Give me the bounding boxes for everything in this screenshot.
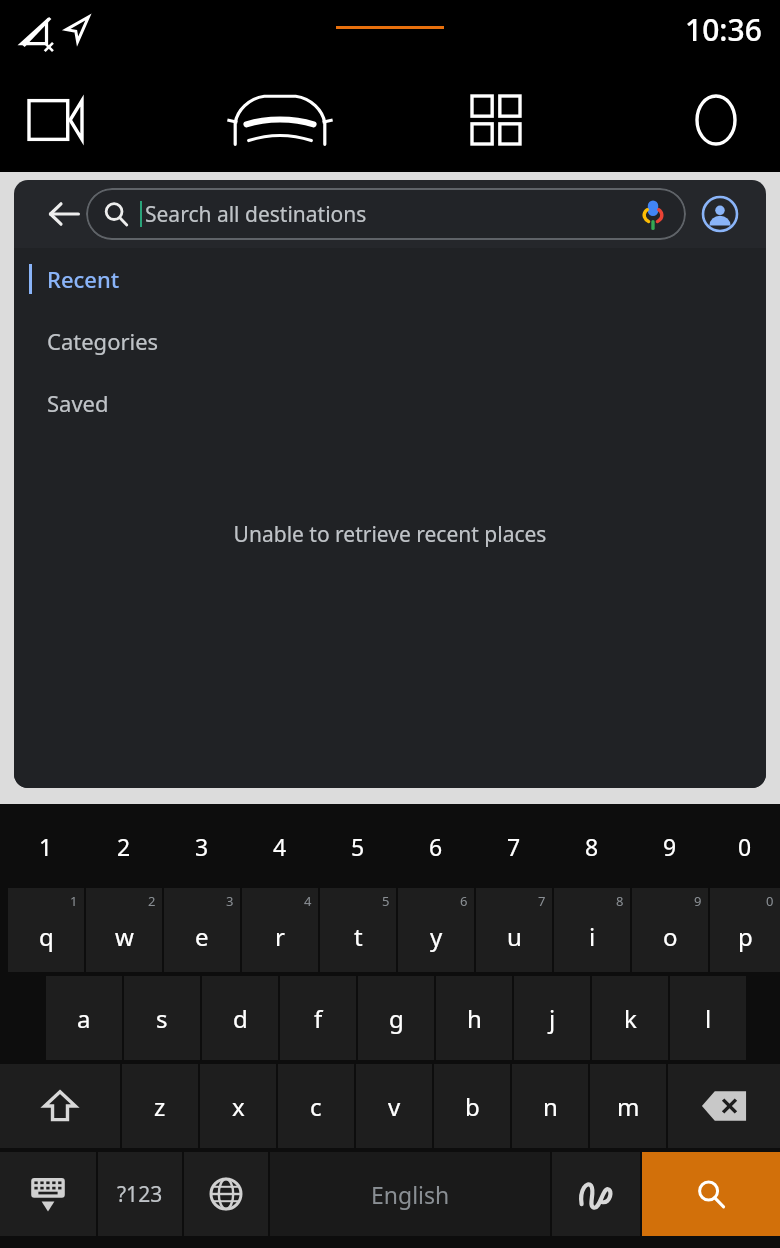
button[interactable]: n <box>512 1064 588 1148</box>
staticText: 0 <box>766 892 774 910</box>
button[interactable]: z <box>122 1064 198 1148</box>
staticText: g <box>389 1002 404 1035</box>
button[interactable]: a <box>46 976 122 1060</box>
button[interactable]: 6 <box>398 888 474 972</box>
staticText: Categories <box>47 326 159 356</box>
staticText: c <box>310 1090 322 1123</box>
staticText: r <box>275 920 285 953</box>
staticText: 7 <box>507 831 521 862</box>
staticText: b <box>465 1090 480 1123</box>
staticText: 3 <box>226 892 234 910</box>
button[interactable]: Car <box>215 68 345 172</box>
button[interactable]: f <box>280 976 356 1060</box>
button[interactable]: h <box>436 976 512 1060</box>
staticText: f <box>314 1002 323 1035</box>
button[interactable]: j <box>514 976 590 1060</box>
button[interactable]: Hide keyboard <box>0 1152 96 1236</box>
staticText: 6 <box>460 892 468 910</box>
button[interactable]: Recent <box>14 248 766 310</box>
staticText: y <box>430 920 443 953</box>
staticText: 9 <box>663 831 677 862</box>
staticText: 4 <box>273 831 287 862</box>
button[interactable]: s <box>124 976 200 1060</box>
button[interactable]: 1 <box>8 888 84 972</box>
staticText: 0 <box>738 831 752 862</box>
staticText: 6 <box>429 831 443 862</box>
staticText: 8 <box>616 892 624 910</box>
button[interactable]: Back <box>30 180 98 248</box>
button[interactable]: Handwriting <box>552 1152 640 1236</box>
staticText: j <box>549 1002 556 1035</box>
staticText: 10:36 <box>685 9 762 50</box>
staticText: Recent <box>47 264 120 294</box>
button[interactable]: 7 <box>476 888 552 972</box>
button[interactable]: x <box>200 1064 276 1148</box>
button[interactable]: 9 <box>632 888 708 972</box>
staticText: l <box>705 1002 712 1035</box>
staticText: z <box>154 1090 166 1123</box>
button[interactable]: 5 <box>320 888 396 972</box>
button[interactable]: v <box>356 1064 432 1148</box>
staticText: v <box>388 1090 401 1123</box>
staticText: 1 <box>70 892 78 910</box>
staticText: 5 <box>351 831 365 862</box>
staticText: m <box>617 1090 640 1123</box>
button[interactable]: g <box>358 976 434 1060</box>
staticText: s <box>156 1002 168 1035</box>
button[interactable]: Backspace <box>668 1064 780 1148</box>
button[interactable]: 2 <box>86 888 162 972</box>
staticText: a <box>77 1002 91 1035</box>
button[interactable]: k <box>592 976 668 1060</box>
staticText: Unable to retrieve recent places <box>14 520 766 549</box>
staticText: 4 <box>304 892 312 910</box>
button[interactable]: l <box>670 976 746 1060</box>
staticText: q <box>39 920 54 953</box>
button[interactable]: Apps <box>440 68 552 172</box>
button[interactable]: 0 <box>710 888 780 972</box>
staticText: Search all destinations <box>145 200 367 229</box>
staticText: o <box>663 920 678 953</box>
staticText: ?123 <box>117 1180 163 1209</box>
button[interactable]: m <box>590 1064 666 1148</box>
button[interactable]: 4 <box>242 888 318 972</box>
staticText: 1 <box>39 831 53 862</box>
button[interactable]: Profile <box>668 68 764 172</box>
staticText: Saved <box>47 388 109 418</box>
staticText: 2 <box>148 892 156 910</box>
button[interactable]: 8 <box>554 888 630 972</box>
staticText: k <box>624 1002 637 1035</box>
staticText: i <box>589 920 596 953</box>
staticText: 2 <box>117 831 131 862</box>
staticText: 7 <box>538 892 546 910</box>
button[interactable]: Account <box>694 188 746 240</box>
button[interactable]: d <box>202 976 278 1060</box>
button[interactable]: c <box>278 1064 354 1148</box>
staticText: 9 <box>694 892 702 910</box>
button[interactable]: Categories <box>14 310 766 372</box>
staticText: p <box>738 920 753 953</box>
staticText: English <box>371 1179 450 1210</box>
button[interactable]: Search all destinations <box>86 188 686 240</box>
staticText: h <box>467 1002 482 1035</box>
button[interactable]: b <box>434 1064 510 1148</box>
button[interactable]: Shift <box>0 1064 120 1148</box>
button[interactable]: English <box>270 1152 550 1236</box>
button[interactable]: Camera <box>10 68 120 172</box>
button[interactable]: 3 <box>164 888 240 972</box>
button[interactable]: Saved <box>14 372 766 434</box>
staticText: 5 <box>382 892 390 910</box>
button[interactable]: Search <box>642 1152 780 1236</box>
staticText: d <box>233 1002 248 1035</box>
staticText: e <box>195 920 209 953</box>
staticText: u <box>507 920 522 953</box>
staticText: w <box>115 920 134 953</box>
staticText: t <box>354 920 363 953</box>
staticText: 8 <box>585 831 599 862</box>
staticText: 3 <box>195 831 209 862</box>
button[interactable]: Change language <box>184 1152 268 1236</box>
staticText: n <box>543 1090 558 1123</box>
button[interactable]: ?123 <box>98 1152 182 1236</box>
staticText: x <box>232 1090 245 1123</box>
